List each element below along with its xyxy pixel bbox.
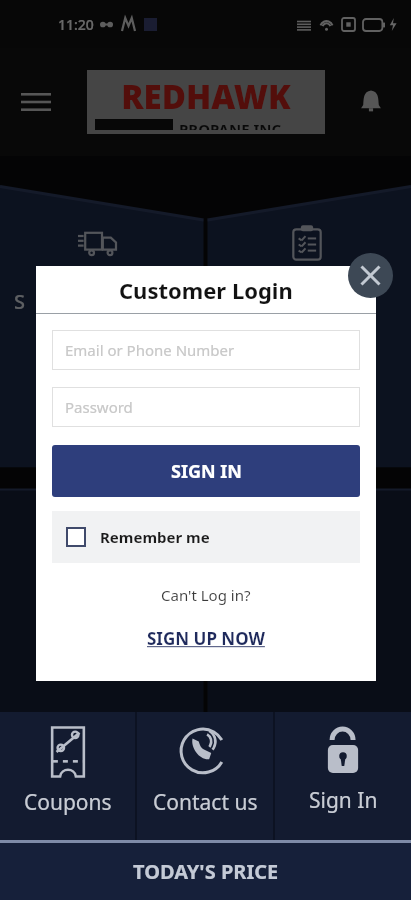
staticText: Contact us <box>153 788 258 817</box>
staticText: REDHAWK <box>95 74 317 119</box>
button[interactable]: Close <box>348 253 393 298</box>
staticText: Contact us <box>153 788 258 817</box>
button[interactable]: Notifications <box>349 80 393 124</box>
staticText: Coupons <box>24 788 112 817</box>
button[interactable]: TODAY'S PRICE <box>0 843 411 900</box>
staticText: 11:20 <box>58 15 94 34</box>
staticText: Coupons <box>24 788 112 817</box>
staticText: Remember me <box>100 527 210 547</box>
button[interactable]: Sign In <box>275 712 411 840</box>
button[interactable]: SIGN IN <box>52 445 360 497</box>
staticText: SIGN UP NOW <box>147 627 265 650</box>
button[interactable]: Coupons <box>0 712 135 840</box>
button[interactable]: SIGN UP NOW <box>141 625 271 652</box>
staticText: TODAY'S PRICE <box>133 858 279 885</box>
staticText: PROPANE INC. <box>179 119 286 130</box>
staticText: Password <box>65 397 133 417</box>
button[interactable]: Redhawk Propane Inc. logo <box>87 70 325 134</box>
button[interactable]: Email or Phone Number <box>52 330 360 370</box>
button[interactable]: Menu <box>14 80 58 124</box>
button[interactable]: Remember me <box>52 511 360 563</box>
staticText: SIGN IN <box>171 459 242 484</box>
staticText: Customer Login <box>119 275 293 305</box>
button[interactable]: Password <box>52 387 360 427</box>
button[interactable]: Contact us <box>137 712 273 840</box>
staticText: Can't Log in? <box>161 585 251 605</box>
staticText: Email or Phone Number <box>65 340 235 360</box>
button[interactable]: Coupons <box>0 712 135 840</box>
staticText: Sign In <box>309 786 378 815</box>
button[interactable]: TODAY'S PRICE <box>0 843 411 900</box>
staticText: Sign In <box>309 786 378 815</box>
staticText: TODAY'S PRICE <box>133 858 279 885</box>
staticText: S <box>14 288 25 315</box>
button[interactable]: Sign In <box>275 712 411 840</box>
button[interactable]: Contact us <box>137 712 273 840</box>
